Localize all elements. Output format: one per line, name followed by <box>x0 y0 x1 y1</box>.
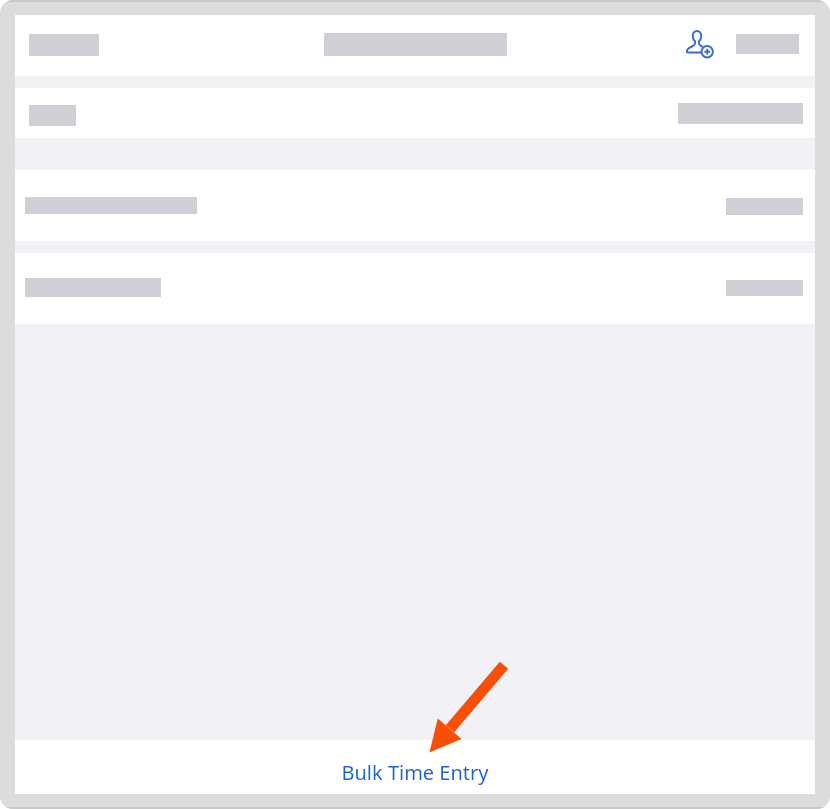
button[interactable] <box>736 28 799 60</box>
button[interactable]: List item 1 <box>15 88 815 138</box>
staticText: Bulk Time Entry <box>341 759 489 786</box>
button[interactable]: List item 3 <box>15 253 815 324</box>
button[interactable]: List item 2 <box>15 170 815 241</box>
button[interactable]: Bulk Time Entry <box>15 740 815 794</box>
button[interactable] <box>29 29 99 61</box>
button[interactable]: Add person <box>684 28 716 58</box>
